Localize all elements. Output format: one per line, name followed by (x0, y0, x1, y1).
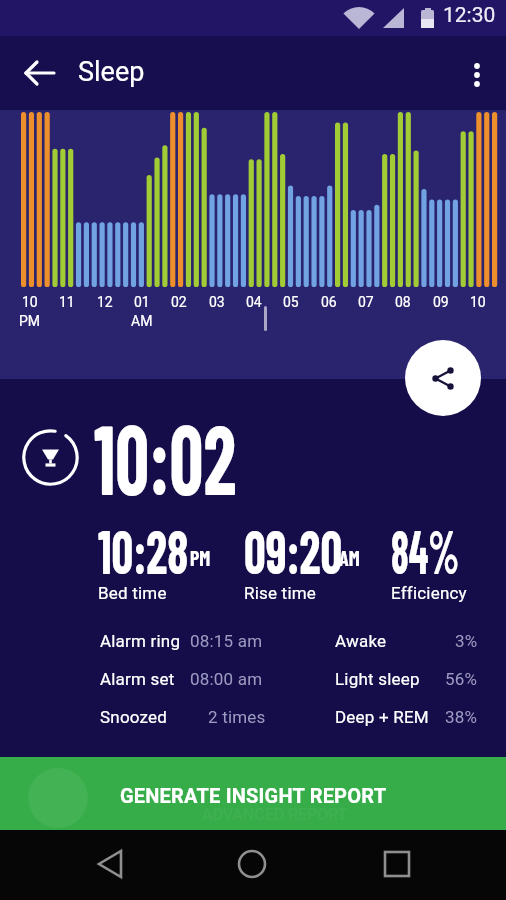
staticText: 08 (395, 294, 411, 310)
staticText: 06 (321, 294, 337, 310)
staticText: 01 (134, 294, 150, 310)
staticText: 08:00 am (190, 669, 263, 689)
staticText: 84% (391, 512, 459, 586)
staticText: 10 (22, 294, 38, 310)
button[interactable] (375, 842, 419, 886)
staticText: Efficiency (391, 583, 467, 603)
staticText: Snoozed (100, 707, 168, 727)
staticText: 38% (445, 707, 478, 727)
button[interactable] (455, 51, 499, 95)
staticText: 12 (97, 294, 113, 310)
staticText: 11 (59, 294, 75, 310)
staticText: 12:30 (443, 3, 496, 28)
staticText: Sleep (78, 56, 145, 88)
button[interactable] (90, 842, 134, 886)
staticText: AM (131, 313, 153, 329)
staticText: ADVANCED REPORT (202, 805, 348, 824)
staticText: 56% (445, 669, 478, 689)
staticText: GENERATE INSIGHT REPORT (120, 784, 387, 807)
staticText: 10 (470, 294, 486, 310)
staticText: Bed time (98, 583, 167, 603)
staticText: 02 (171, 294, 187, 310)
staticText: Awake (335, 631, 387, 651)
button[interactable]: ADVANCED REPORT (0, 757, 506, 830)
button[interactable] (405, 340, 481, 416)
staticText: 04 (246, 294, 262, 310)
staticText: Deep + REM (335, 707, 429, 727)
staticText: PM (19, 313, 41, 329)
staticText: 10:28 (98, 512, 189, 586)
staticText: PM (190, 546, 211, 570)
button[interactable] (230, 842, 274, 886)
staticText: 07 (358, 294, 374, 310)
staticText: Alarm set (100, 669, 175, 689)
staticText: 10:02 (94, 398, 236, 514)
staticText: Rise time (244, 583, 317, 603)
staticText: 03 (209, 294, 225, 310)
staticText: AM (339, 546, 360, 570)
staticText: 2 times (208, 707, 266, 727)
staticText: 09:20 (244, 512, 343, 586)
staticText: 3% (455, 631, 478, 651)
staticText: 09 (433, 294, 449, 310)
staticText: Light sleep (335, 669, 420, 689)
staticText: Alarm ring (100, 631, 181, 651)
button[interactable] (18, 51, 62, 95)
staticText: 05 (283, 294, 299, 310)
staticText: 08:15 am (190, 631, 263, 651)
